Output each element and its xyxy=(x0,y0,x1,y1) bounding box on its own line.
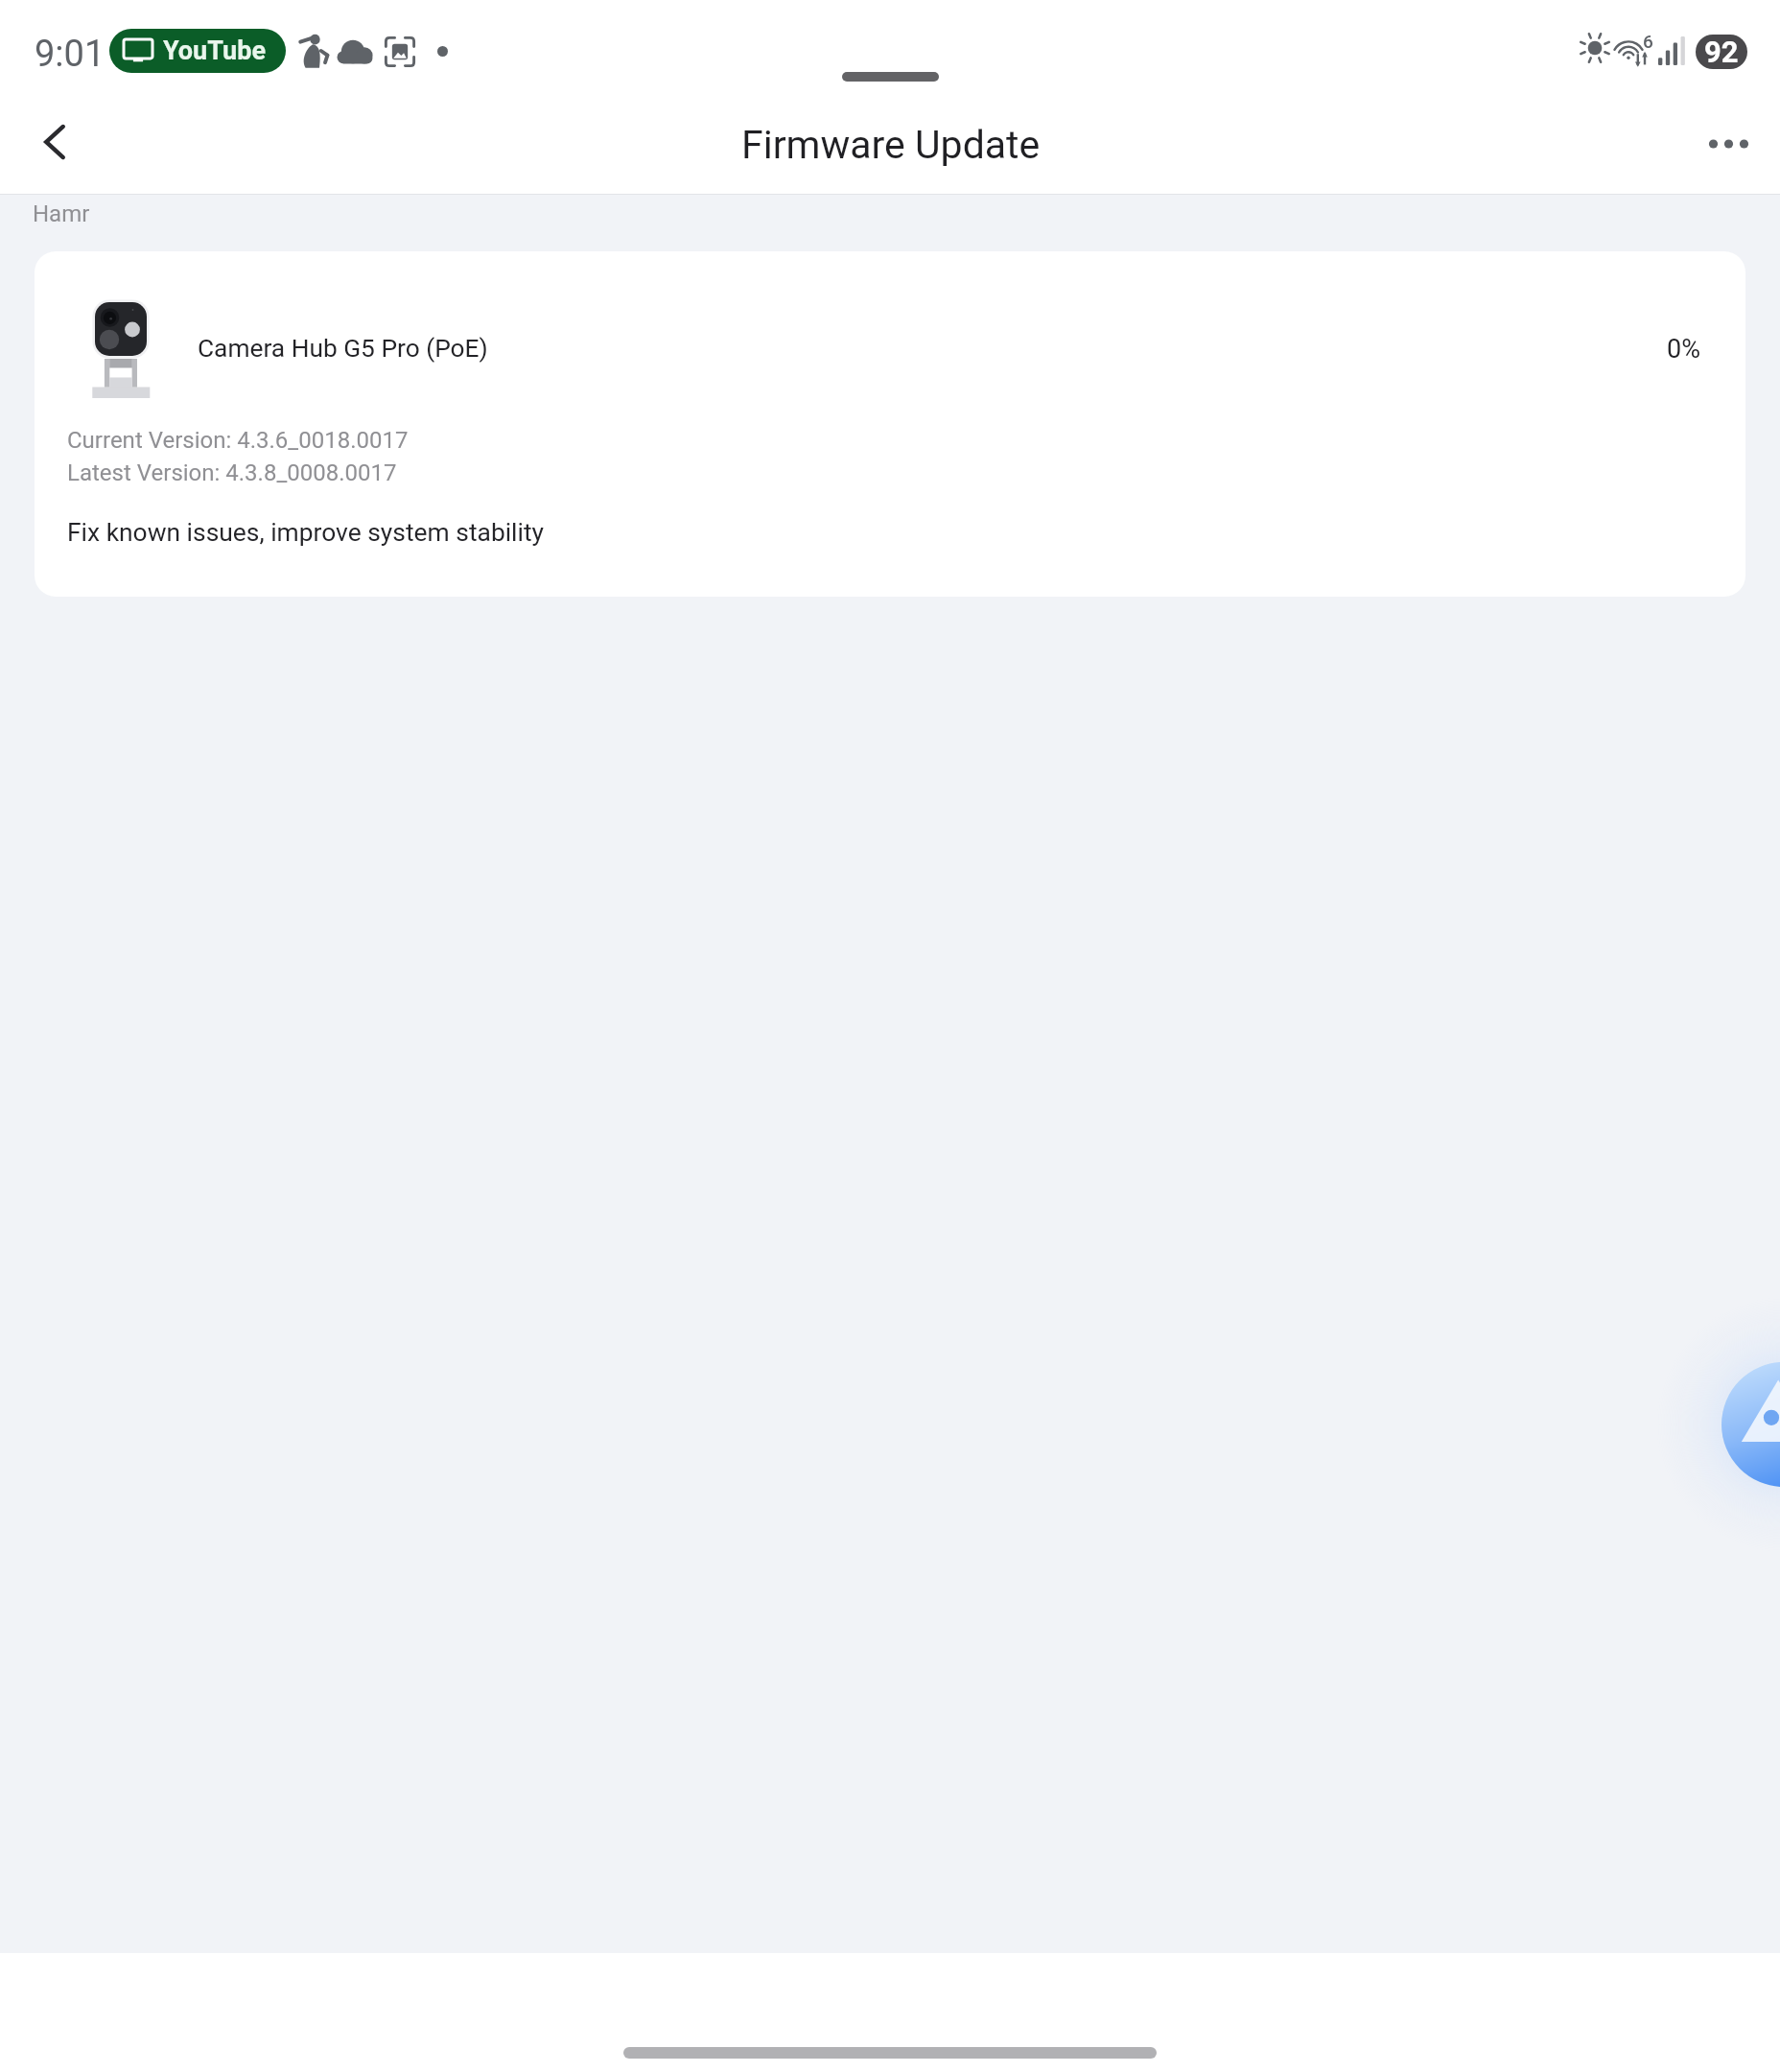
button[interactable]: Firmware update warning xyxy=(1669,1309,1780,1540)
staticText: Current Version: 4.3.6_0018.0017 xyxy=(67,427,409,454)
staticText: 0% xyxy=(1667,334,1700,365)
button[interactable]: YouTube xyxy=(109,29,286,73)
staticText: 9:01 xyxy=(35,33,105,76)
staticText: 6 xyxy=(1643,31,1653,52)
staticText: Firmware Update xyxy=(741,122,1041,168)
staticText: Latest Version: 4.3.8_0008.0017 xyxy=(67,459,397,486)
staticText: YouTube xyxy=(163,35,266,66)
staticText: Fix known issues, improve system stabili… xyxy=(67,518,545,548)
staticText: Camera Hub G5 Pro (PoE) xyxy=(198,334,488,364)
staticText: Hamr xyxy=(33,200,90,227)
button[interactable]: More options xyxy=(1698,109,1767,178)
button[interactable]: Back xyxy=(20,107,89,177)
button[interactable]: Camera Hub G5 Pro (PoE) xyxy=(35,251,1745,597)
staticText: 92 xyxy=(1704,35,1739,69)
